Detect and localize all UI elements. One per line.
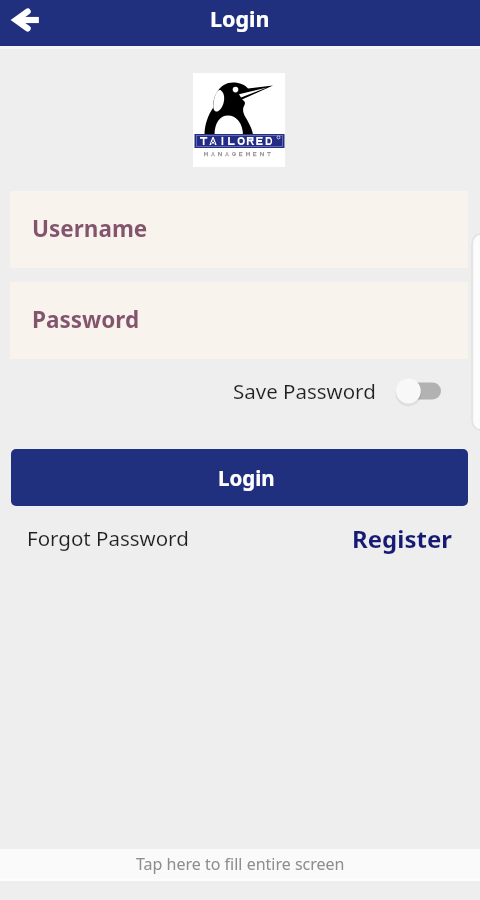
staticText: Register: [352, 522, 452, 555]
staticText: Login: [210, 4, 270, 33]
staticText: Tap here to fill entire screen: [136, 853, 345, 875]
staticText: Forgot Password: [27, 524, 189, 552]
button[interactable]: Username: [10, 191, 468, 268]
button[interactable]: Back: [4, 0, 48, 40]
staticText: Password: [32, 304, 140, 335]
button[interactable]: Password: [10, 282, 468, 359]
button[interactable]: Login: [11, 449, 468, 506]
button[interactable]: Save Password: [233, 374, 441, 407]
button[interactable]: Save Password toggle: [395, 374, 441, 407]
staticText: Username: [32, 213, 148, 244]
button[interactable]: Register: [352, 519, 452, 557]
button[interactable]: Tap here to fill entire screen: [0, 849, 480, 879]
button[interactable]: Forgot Password: [27, 521, 189, 554]
staticText: Save Password: [233, 377, 376, 405]
staticText: Login: [218, 464, 275, 492]
